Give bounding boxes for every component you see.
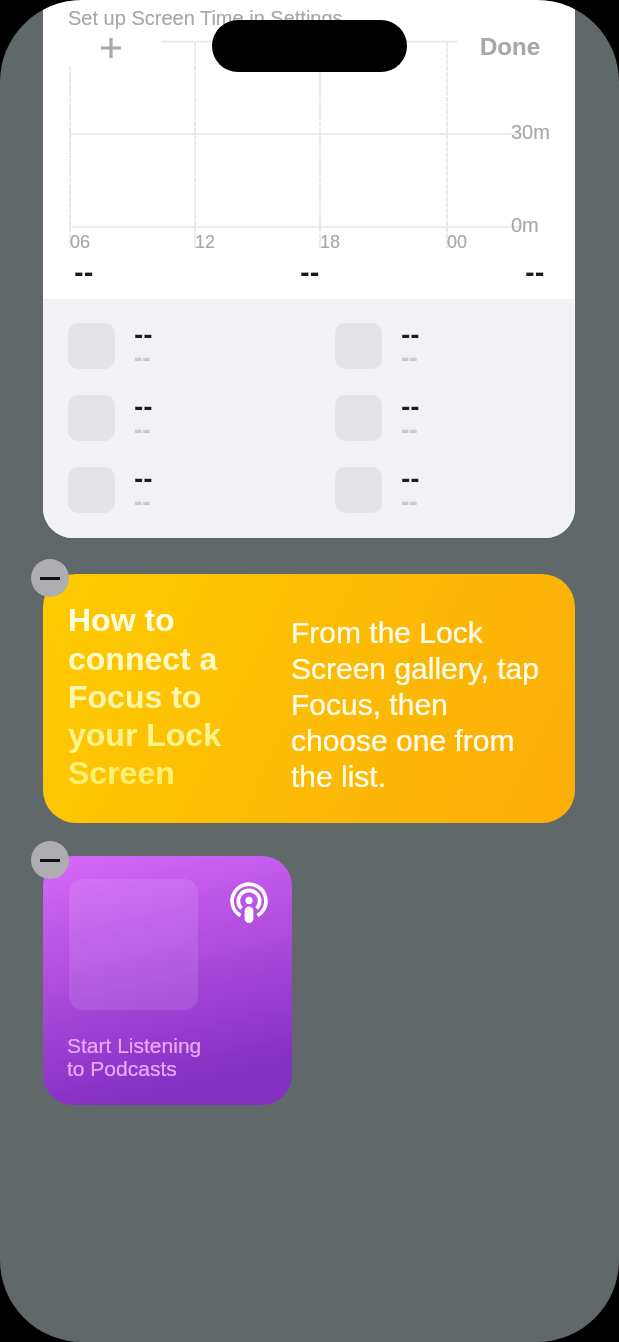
staticText: -- (401, 343, 418, 371)
staticText: -- (134, 391, 153, 422)
staticText: -- (134, 463, 153, 494)
staticText: -- (401, 415, 418, 443)
staticText: Set up Screen Time in Settings (68, 7, 343, 29)
button[interactable]: Done (480, 33, 540, 60)
staticText: -- (401, 319, 420, 350)
staticText: 30m (511, 121, 550, 143)
staticText: -- (401, 391, 420, 422)
staticText: 00 (447, 232, 468, 252)
staticText: 12 (195, 232, 216, 252)
button[interactable]: Remove widget (31, 841, 69, 879)
button[interactable]: Podcasts (43, 856, 292, 1105)
button[interactable]: Remove widget (31, 559, 69, 597)
staticText: -- (134, 415, 151, 443)
staticText: 0m (511, 214, 539, 236)
staticText: How to connect a Focus to your Lock Scre… (68, 602, 263, 791)
staticText: -- (134, 319, 153, 350)
staticText: -- (300, 256, 320, 288)
staticText: Start Listening to Podcasts (67, 1034, 202, 1081)
button[interactable]: How to connect a Focus to your Lock Scre… (43, 574, 575, 823)
button[interactable]: Set up Screen Time in Settings (43, 0, 575, 538)
staticText: -- (134, 343, 151, 371)
staticText: 18 (320, 232, 341, 252)
other: Podcasts (229, 881, 269, 921)
staticText: -- (401, 463, 420, 494)
staticText: -- (525, 256, 545, 288)
staticText: -- (74, 256, 94, 288)
button[interactable]: Add (101, 38, 121, 58)
staticText: -- (401, 487, 418, 515)
staticText: 06 (70, 232, 91, 252)
staticText: -- (134, 487, 151, 515)
staticText: From the Lock Screen gallery, tap Focus,… (291, 616, 541, 794)
